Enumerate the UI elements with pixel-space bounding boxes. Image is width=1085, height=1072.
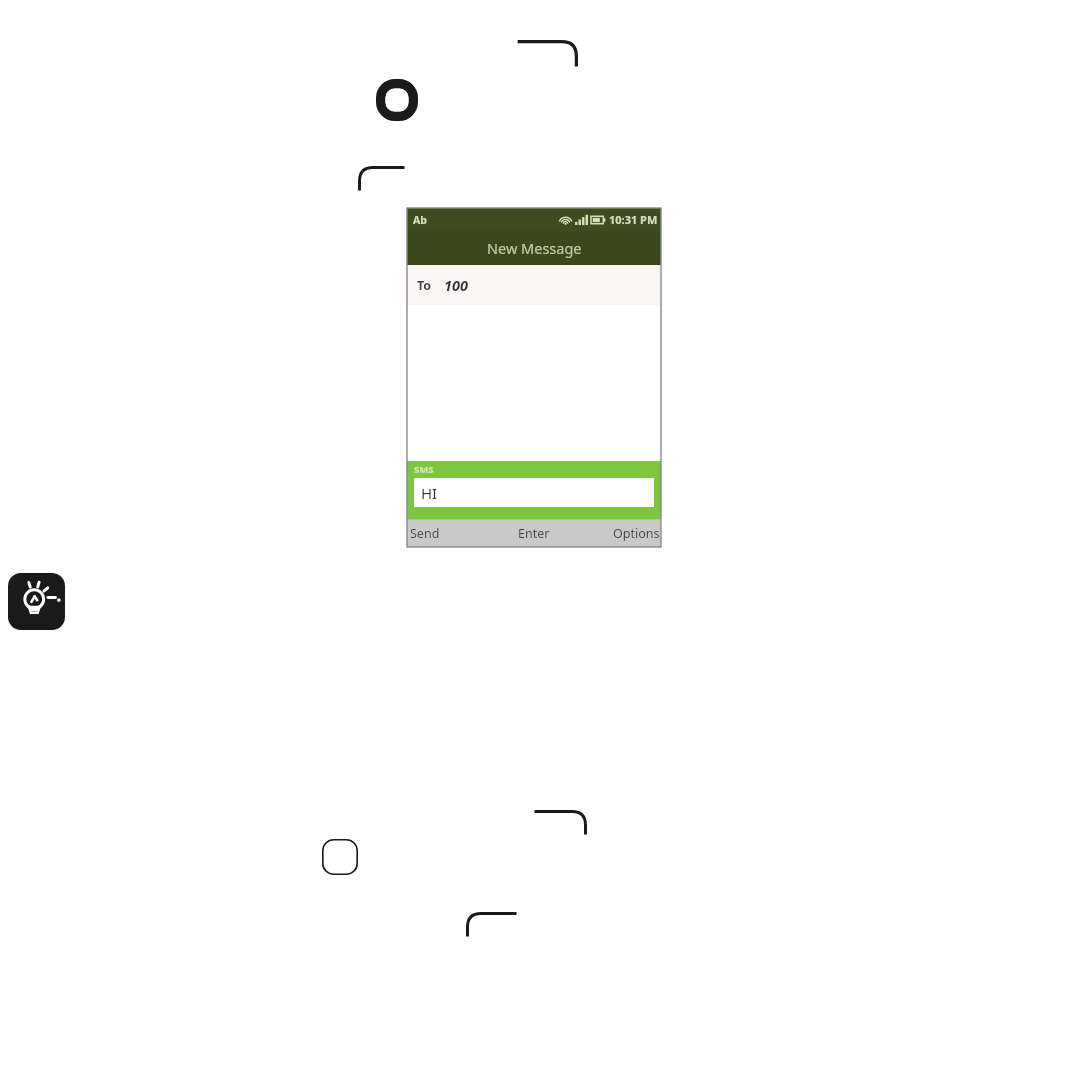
button[interactable]: To — [407, 265, 661, 305]
other: Callout marker — [322, 839, 358, 875]
button[interactable]: Options — [576, 519, 661, 547]
staticText: New Message — [487, 238, 582, 258]
button[interactable]: Enter — [491, 519, 576, 547]
button[interactable] — [407, 305, 661, 461]
staticText: Options — [613, 525, 660, 542]
staticText: 100 — [444, 275, 468, 295]
staticText: 10:31 PM — [609, 212, 658, 227]
staticText: Ab — [413, 213, 427, 227]
button[interactable]: Tip — [8, 573, 65, 630]
staticText: SMS — [414, 463, 434, 476]
staticText: To — [417, 277, 432, 294]
other: Callout marker — [376, 79, 418, 121]
staticText: Enter — [518, 525, 550, 542]
button[interactable]: HI — [414, 478, 654, 507]
staticText: HI — [421, 483, 438, 503]
button[interactable]: Send — [407, 519, 491, 547]
staticText: Send — [410, 525, 440, 542]
